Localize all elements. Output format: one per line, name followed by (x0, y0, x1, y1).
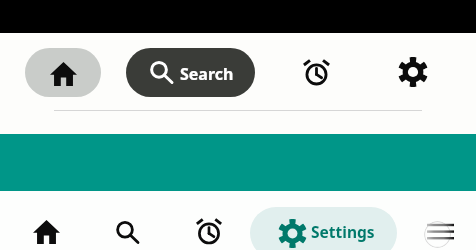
button[interactable]: Home (23, 209, 69, 250)
staticText: Search (180, 63, 234, 85)
button[interactable]: Search (104, 209, 150, 250)
button[interactable]: Home (25, 48, 101, 97)
button[interactable]: Settings (390, 49, 436, 95)
button[interactable]: Search (126, 48, 255, 97)
button[interactable]: Menu (424, 221, 451, 248)
staticText: Settings (311, 221, 375, 242)
button[interactable]: Alarm (293, 48, 339, 94)
button[interactable]: Alarm (186, 207, 232, 250)
button[interactable]: Settings (250, 207, 397, 250)
